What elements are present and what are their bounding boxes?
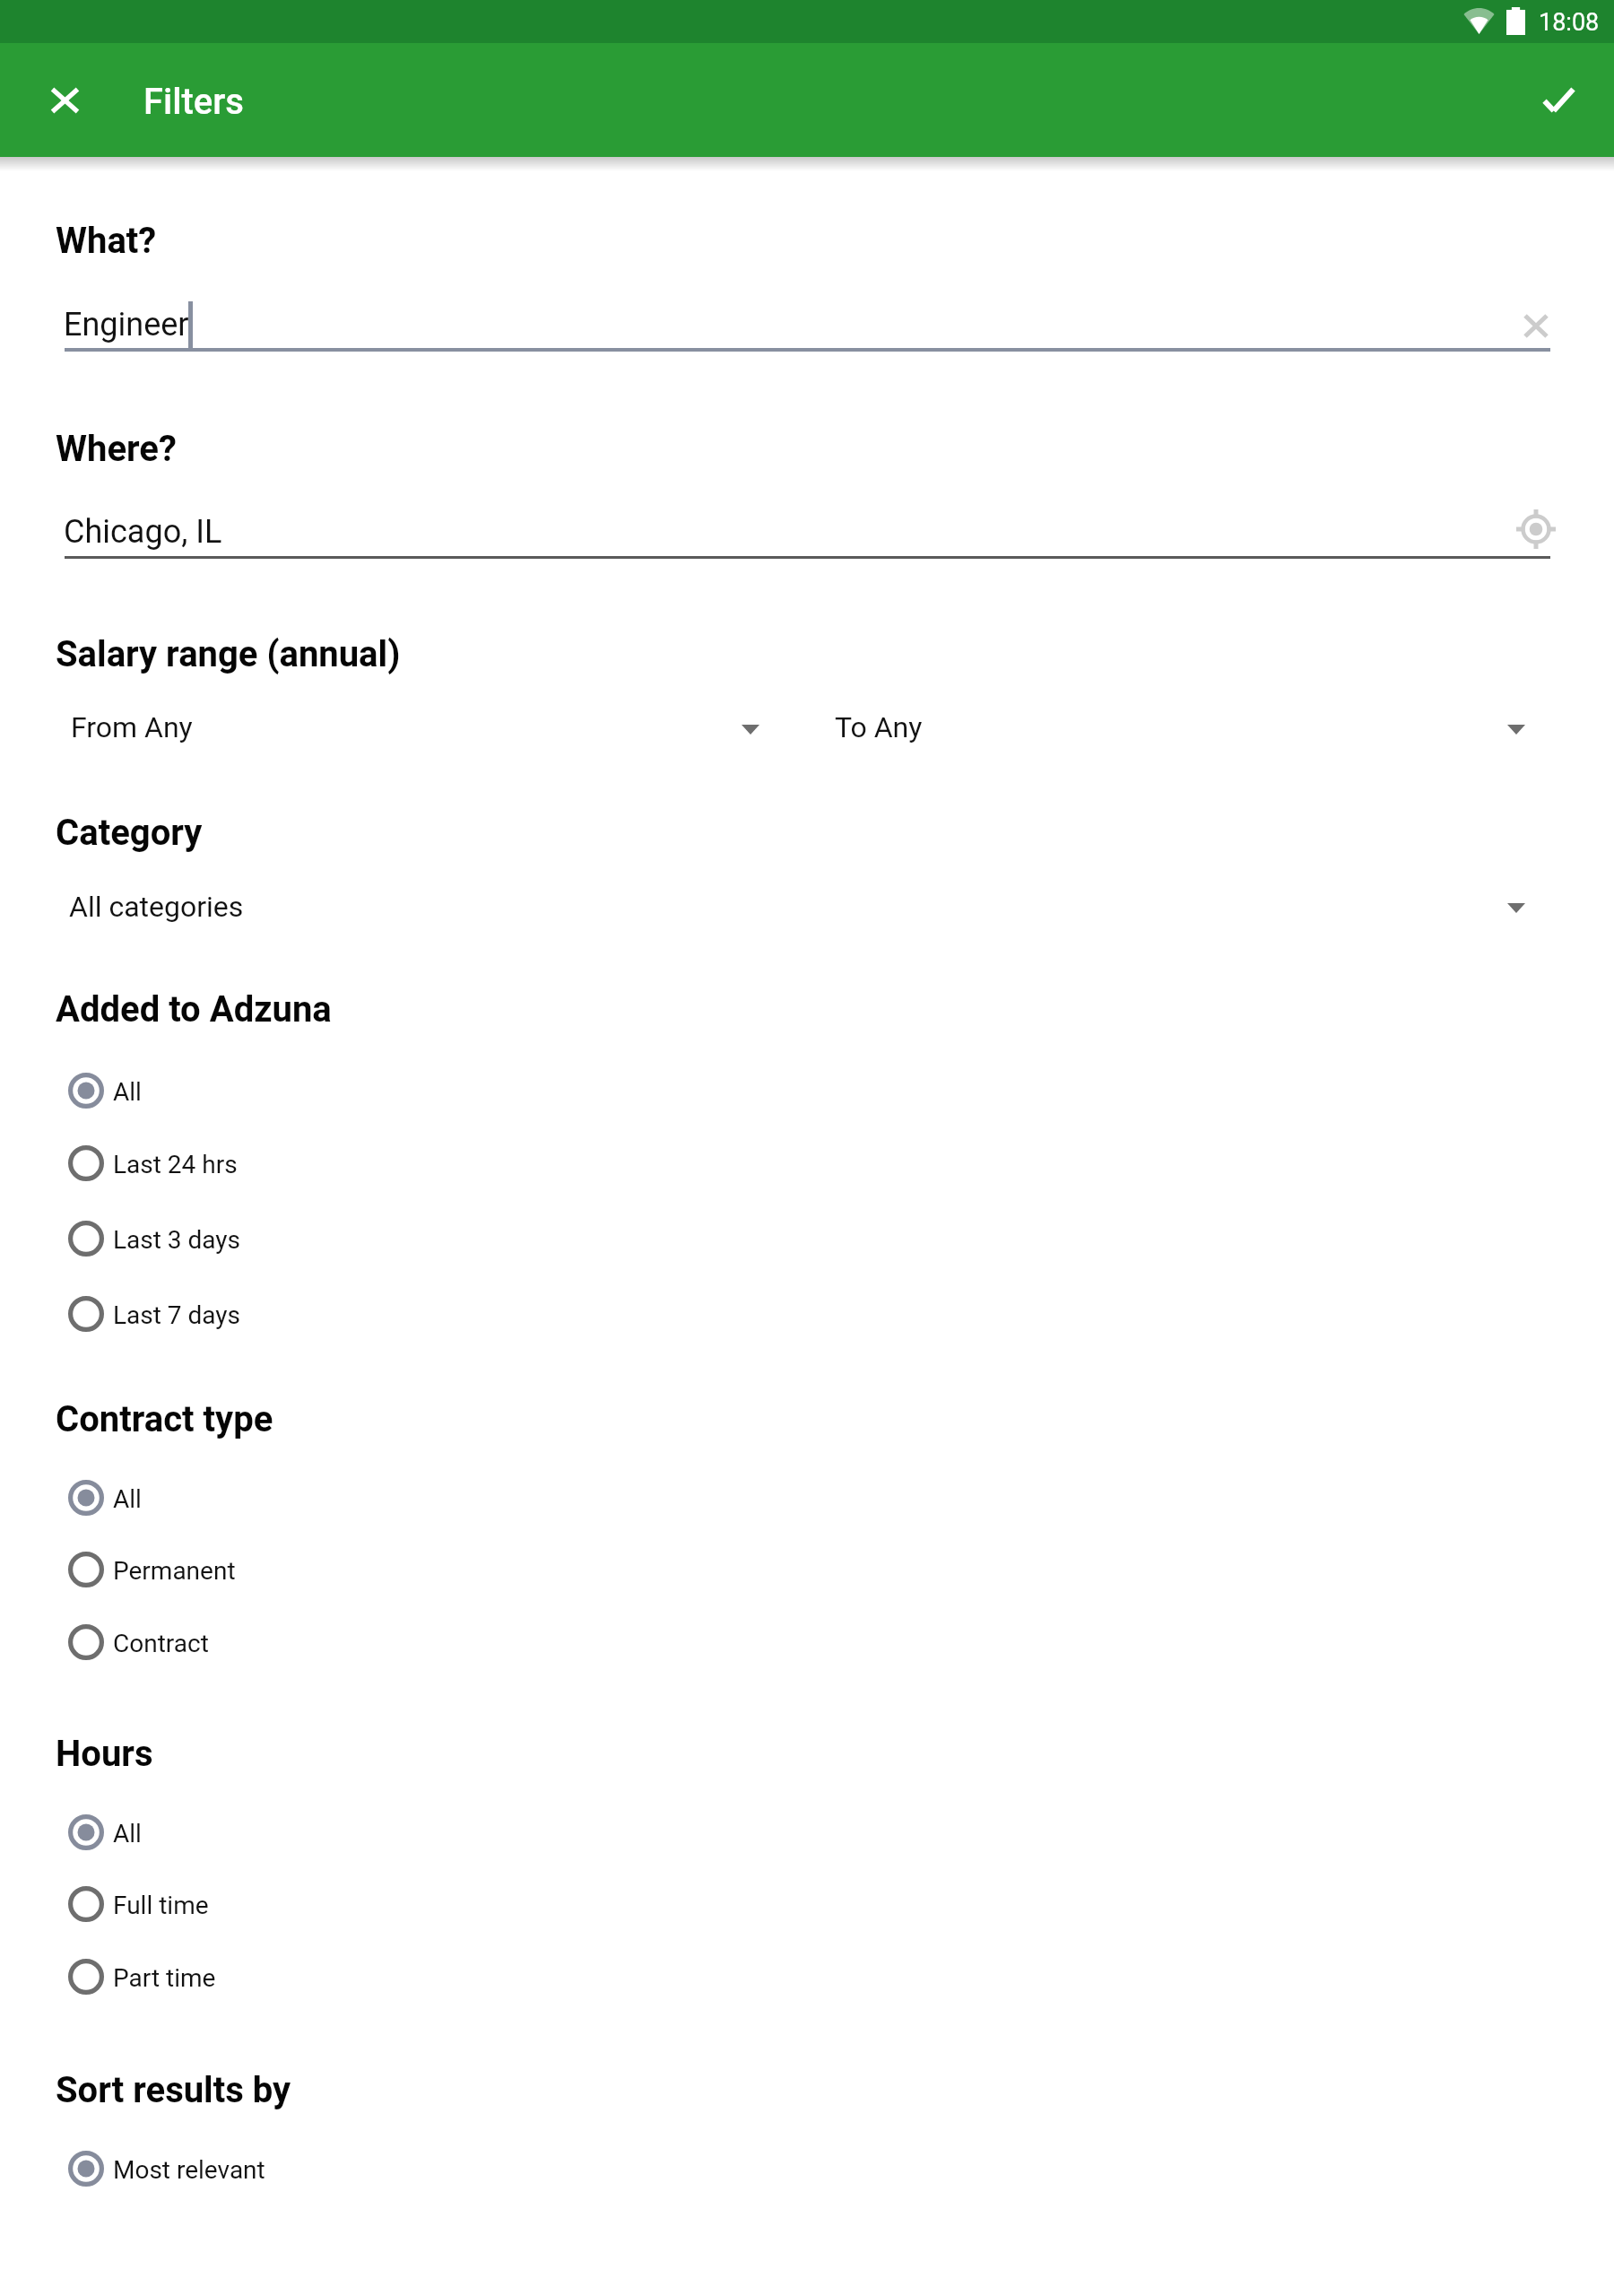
button[interactable]: All <box>0 1462 1614 1534</box>
staticText: Category <box>56 812 203 854</box>
button[interactable]: From Any <box>0 694 807 759</box>
button[interactable]: All <box>0 1055 1614 1126</box>
staticText: Last 24 hrs <box>113 1150 238 1179</box>
staticText: Sort results by <box>56 2069 291 2111</box>
button[interactable]: Most relevant <box>0 2133 1614 2205</box>
button[interactable]: Last 24 hrs <box>0 1127 1614 1199</box>
button[interactable]: Part time <box>0 1941 1614 2013</box>
staticText: Contract type <box>56 1398 273 1440</box>
staticText: Permanent <box>113 1556 236 1586</box>
button[interactable]: Last 3 days <box>0 1203 1614 1274</box>
staticText: To Any <box>835 710 923 744</box>
button[interactable]: Full time <box>0 1868 1614 1940</box>
button[interactable]: To Any <box>807 694 1614 759</box>
button[interactable]: Close <box>26 62 103 139</box>
button[interactable]: Last 7 days <box>0 1278 1614 1350</box>
staticText: Engineer <box>64 306 189 344</box>
button[interactable]: Chicago, IL <box>0 502 1614 558</box>
staticText: Last 7 days <box>113 1300 241 1330</box>
staticText: From Any <box>71 710 193 744</box>
button[interactable]: Apply filters <box>1520 61 1597 138</box>
staticText: What? <box>56 220 157 262</box>
staticText: Contract <box>113 1629 209 1658</box>
staticText: Where? <box>56 428 177 470</box>
staticText: Part time <box>113 1963 216 1993</box>
staticText: Added to Adzuna <box>56 988 332 1031</box>
button[interactable]: Clear search term <box>1497 287 1575 364</box>
button[interactable]: All categories <box>0 873 1614 937</box>
staticText: Hours <box>56 1733 153 1775</box>
staticText: All <box>113 1077 142 1107</box>
button[interactable]: Permanent <box>0 1534 1614 1605</box>
button[interactable]: Contract <box>0 1606 1614 1678</box>
staticText: All <box>113 1819 142 1848</box>
staticText: 18:08 <box>1539 8 1600 37</box>
button[interactable]: Engineer <box>0 296 1614 355</box>
staticText: Full time <box>113 1891 209 1920</box>
staticText: Last 3 days <box>113 1225 241 1255</box>
staticText: Chicago, IL <box>64 513 222 551</box>
staticText: Salary range (annual) <box>56 633 401 675</box>
staticText: All categories <box>69 890 244 924</box>
button[interactable]: All <box>0 1796 1614 1868</box>
button[interactable]: Use current location <box>1497 491 1575 568</box>
staticText: Most relevant <box>113 2155 265 2185</box>
staticText: All <box>113 1484 142 1514</box>
staticText: Filters <box>143 81 244 123</box>
